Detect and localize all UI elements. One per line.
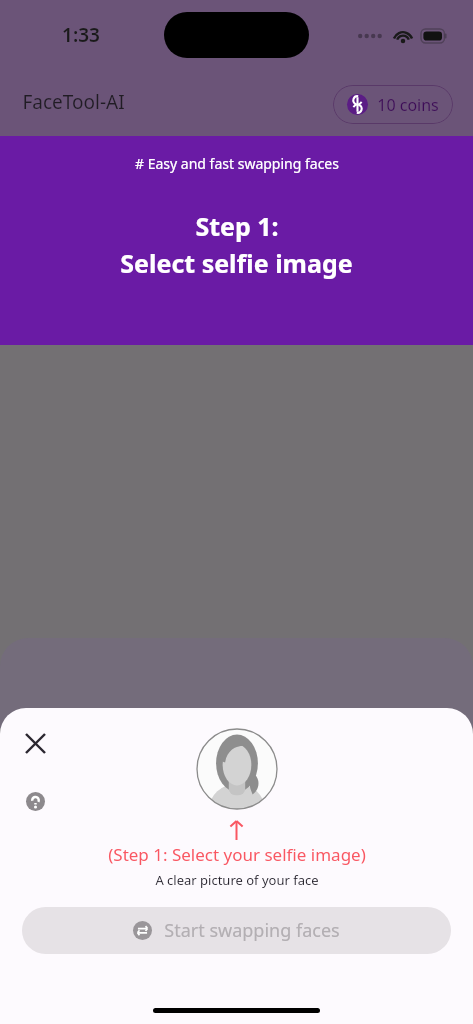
staticText: # Easy and fast swapping faces (135, 154, 339, 173)
staticText: 1:33 (62, 22, 100, 48)
staticText: 10 coins (377, 94, 439, 116)
button[interactable]: 10 coins (333, 85, 453, 124)
button[interactable]: Start swapping faces (22, 907, 451, 954)
staticText: (Step 1: Select your selfie image) (108, 843, 366, 866)
staticText: Start swapping faces (164, 918, 340, 943)
staticText: FaceTool-AI (22, 89, 125, 115)
staticText: Select selfie image (120, 246, 353, 280)
button[interactable]: Help (20, 786, 50, 816)
button[interactable]: Select selfie image (196, 728, 278, 810)
button[interactable]: Close (16, 724, 54, 762)
staticText: Step 1: (195, 209, 279, 243)
staticText: A clear picture of your face (155, 871, 319, 889)
